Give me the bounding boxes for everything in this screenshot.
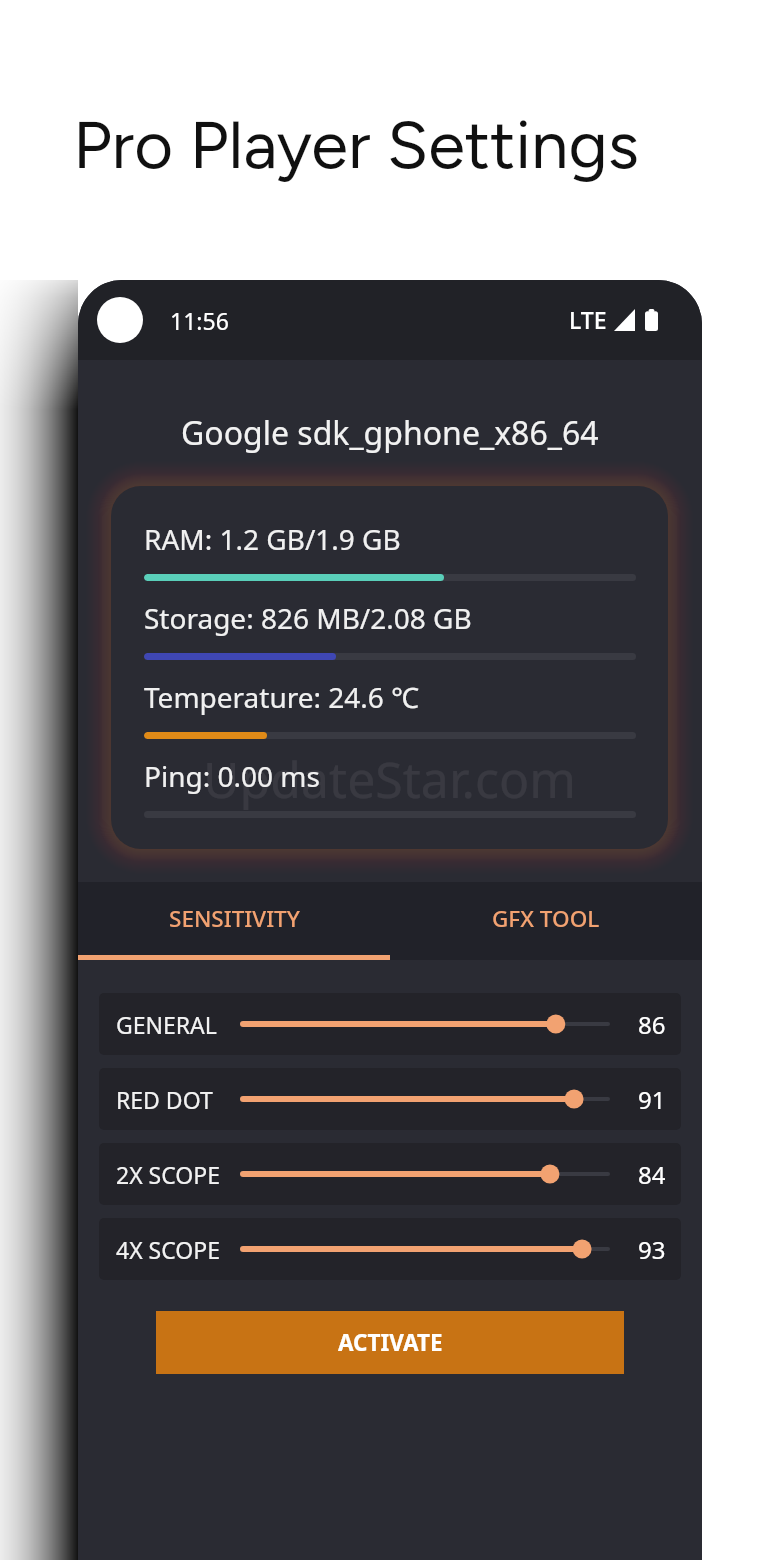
staticText: Storage: 826 MB/2.08 GB [144, 599, 472, 637]
button[interactable]: SENSITIVITY [78, 882, 390, 955]
staticText: 86 [638, 1008, 666, 1041]
staticText: RAM: 1.2 GB/1.9 GB [144, 520, 401, 558]
button[interactable]: 4X SCOPE [99, 1218, 681, 1280]
staticText: 11:56 [170, 305, 229, 336]
staticText: 84 [638, 1158, 666, 1191]
button[interactable]: RED DOT [99, 1068, 681, 1130]
staticText: 4X SCOPE [116, 1234, 243, 1265]
staticText: LTE [569, 304, 607, 335]
staticText: Ping: 0.00 ms [144, 757, 320, 795]
staticText: GFX TOOL [492, 903, 600, 934]
button[interactable]: GFX TOOL [390, 882, 702, 955]
staticText: Google sdk_gphone_x86_64 [181, 411, 599, 455]
staticText: Pro Player Settings [0, 104, 746, 184]
other: Signal strength [614, 309, 635, 331]
button[interactable]: 2X SCOPE [99, 1143, 681, 1205]
other: Battery [645, 309, 658, 331]
staticText: RED DOT [116, 1084, 243, 1115]
staticText: ACTIVATE [338, 1327, 443, 1358]
staticText: SENSITIVITY [169, 903, 300, 934]
button[interactable]: GENERAL [99, 993, 681, 1055]
staticText: Temperature: 24.6 ℃ [144, 678, 419, 716]
staticText: GENERAL [116, 1009, 243, 1040]
staticText: 2X SCOPE [116, 1159, 243, 1190]
staticText: UpdateStar.com [203, 745, 576, 813]
staticText: 91 [638, 1083, 666, 1116]
button[interactable]: ACTIVATE [156, 1311, 624, 1374]
staticText: 93 [638, 1233, 666, 1266]
